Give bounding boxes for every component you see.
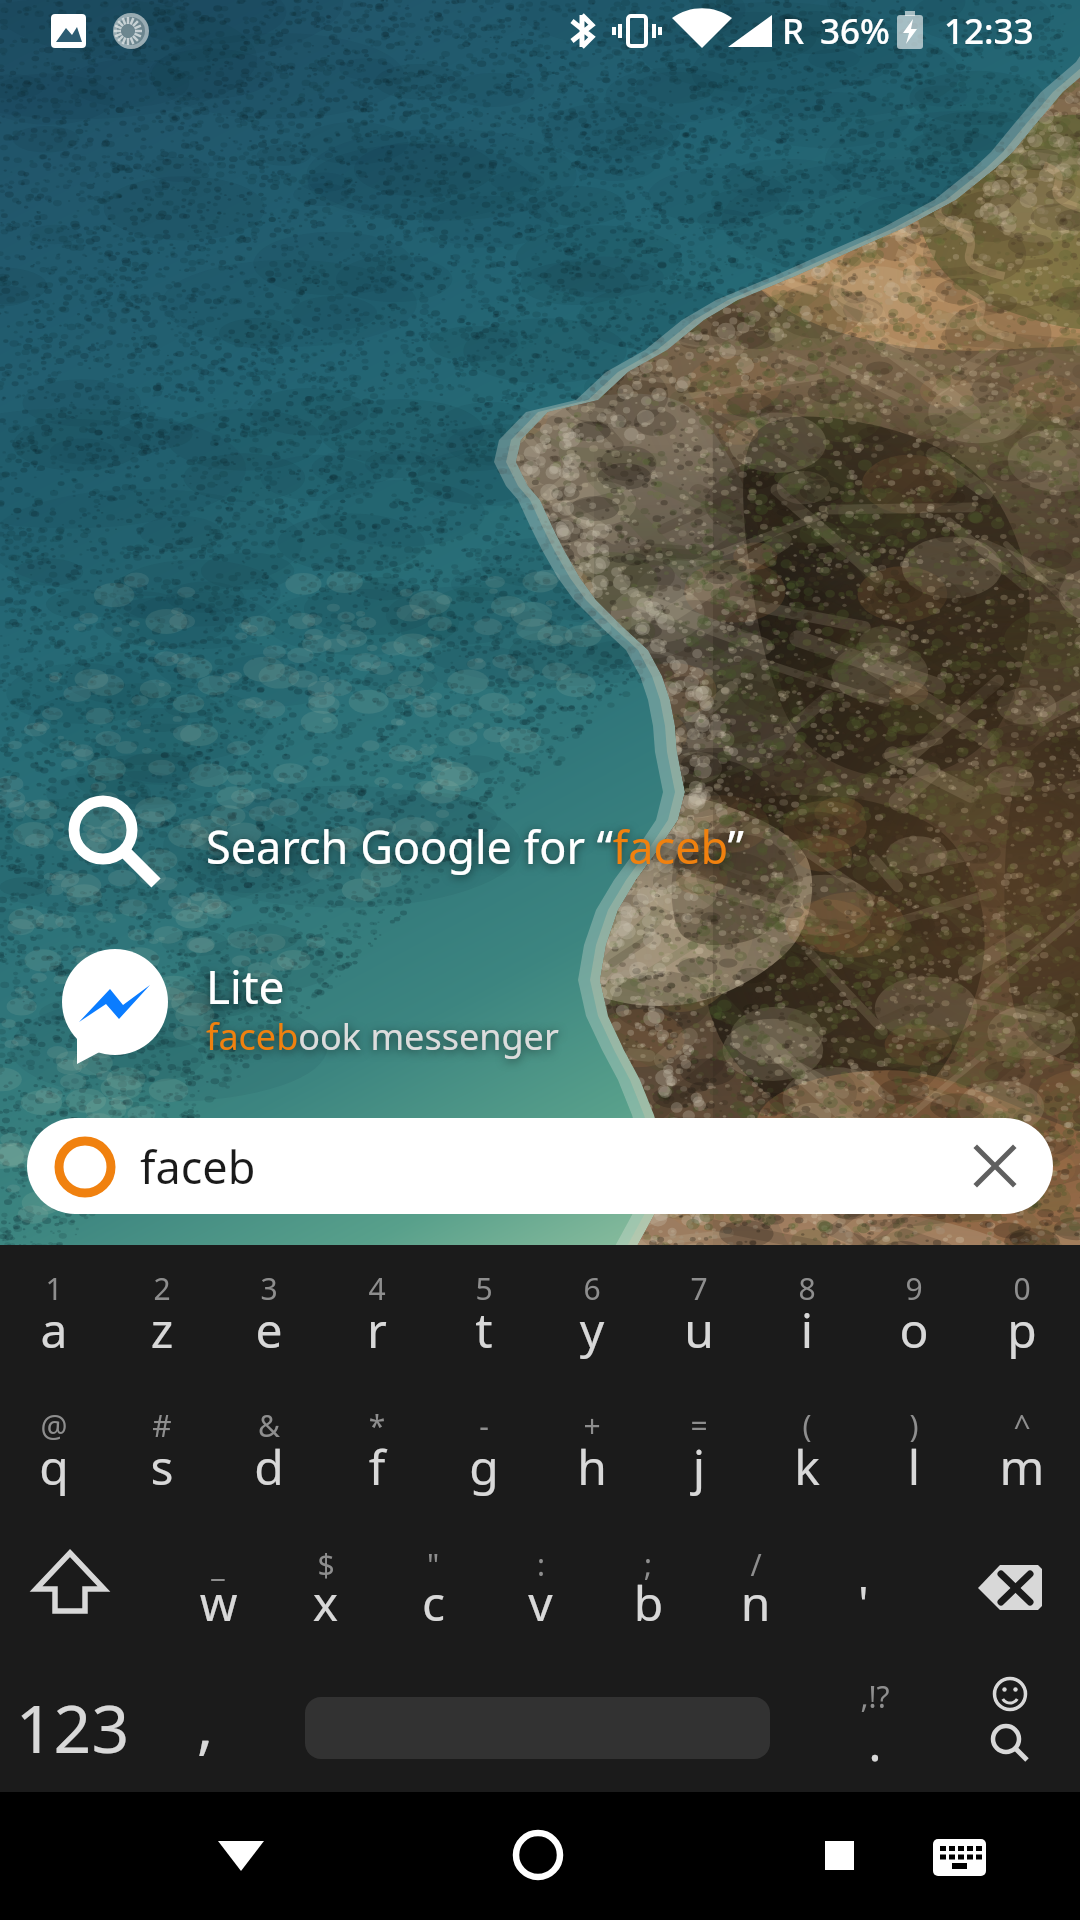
staticText: 123 [0,1682,145,1772]
button[interactable]: u [645,1277,753,1395]
staticText: 2 [122,1268,202,1309]
staticText: d [215,1434,323,1499]
staticText: ; [608,1544,688,1585]
button[interactable]: Clear query [947,1118,1043,1214]
staticText: 6 [552,1268,632,1309]
button[interactable]: ' [810,1550,917,1668]
staticText: r [323,1297,431,1362]
staticText: 9 [874,1268,954,1309]
button[interactable]: Back [177,1792,305,1920]
button[interactable]: c [380,1550,487,1668]
button[interactable]: p [968,1277,1076,1395]
staticText: 3 [229,1268,309,1309]
staticText: / [716,1544,796,1585]
staticText: j [645,1434,753,1499]
button[interactable]: Recents [775,1792,903,1920]
staticText: _ [178,1544,258,1585]
staticText: faceb [140,1136,256,1197]
staticText: b [595,1570,702,1635]
staticText: f [323,1434,431,1499]
staticText: 12:33 [944,7,1034,55]
button[interactable]: r [323,1277,431,1395]
button[interactable]: k [753,1414,861,1532]
staticText: c [380,1570,487,1635]
staticText: p [968,1297,1076,1362]
staticText: 7 [659,1268,739,1309]
button[interactable]: Search Google [0,770,1080,895]
staticText: # [122,1405,202,1446]
staticText: = [659,1405,739,1446]
button[interactable]: f [323,1414,431,1532]
button[interactable]: h [538,1414,646,1532]
staticText: g [430,1434,538,1499]
staticText: + [552,1405,632,1446]
staticText: . [820,1708,930,1776]
staticText: " [393,1544,473,1585]
staticText: i [753,1297,861,1362]
button[interactable]: x [272,1550,379,1668]
staticText: m [968,1434,1076,1499]
staticText: Lite [206,955,285,1018]
staticText: n [702,1570,809,1635]
staticText: $ [286,1544,366,1585]
staticText: facebook messenger [206,1012,559,1061]
button[interactable]: i [753,1277,861,1395]
staticText: : [501,1544,581,1585]
staticText: 36% [820,7,890,55]
button[interactable]: n [702,1550,809,1668]
staticText: Search Google for “faceb” [206,816,744,877]
button[interactable]: Search [945,1645,1075,1785]
staticText: R [782,7,805,55]
staticText: ( [767,1405,847,1446]
staticText: h [538,1434,646,1499]
button[interactable]: Backspace [930,1515,1080,1645]
staticText: 4 [337,1268,417,1309]
staticText: 1 [14,1268,94,1309]
staticText: w [165,1570,272,1635]
button[interactable]: , [150,1645,260,1775]
button[interactable]: w [165,1550,272,1668]
button[interactable]: b [595,1550,702,1668]
button[interactable]: o [860,1277,968,1395]
button[interactable]: m [968,1414,1076,1532]
staticText: 8 [767,1268,847,1309]
staticText: o [860,1297,968,1362]
button[interactable]: z [108,1277,216,1395]
staticText: e [215,1297,323,1362]
staticText: s [108,1434,216,1499]
button[interactable]: ,!? [820,1645,930,1775]
staticText: @ [14,1405,94,1446]
button[interactable]: Emoji [945,1645,1075,1737]
button[interactable]: y [538,1277,646,1395]
staticText: z [108,1297,216,1362]
staticText: ) [874,1405,954,1446]
button[interactable]: s [108,1414,216,1532]
other: Search Google [43,770,163,890]
button[interactable]: faceb [27,1118,1053,1214]
staticText: , [150,1682,260,1766]
staticText: u [645,1297,753,1362]
staticText: t [430,1297,538,1362]
staticText: ' [810,1570,917,1635]
button[interactable]: Shift [0,1515,160,1645]
button[interactable]: q [0,1414,108,1532]
button[interactable]: e [215,1277,323,1395]
button[interactable]: v [487,1550,594,1668]
button[interactable]: Home [474,1792,602,1920]
staticText: k [753,1434,861,1499]
button[interactable]: a [0,1277,108,1395]
button[interactable]: g [430,1414,538,1532]
button[interactable]: t [430,1277,538,1395]
button[interactable]: d [215,1414,323,1532]
staticText: 0 [982,1268,1062,1309]
button[interactable]: j [645,1414,753,1532]
staticText: * [337,1405,417,1446]
button[interactable]: 123 [0,1645,145,1775]
button[interactable]: l [860,1414,968,1532]
button[interactable]: Lite [0,930,1080,1070]
staticText: x [272,1570,379,1635]
staticText: ,!? [820,1676,930,1717]
button[interactable]: Switch keyboard [896,1792,1024,1920]
staticText: ^ [982,1405,1062,1446]
